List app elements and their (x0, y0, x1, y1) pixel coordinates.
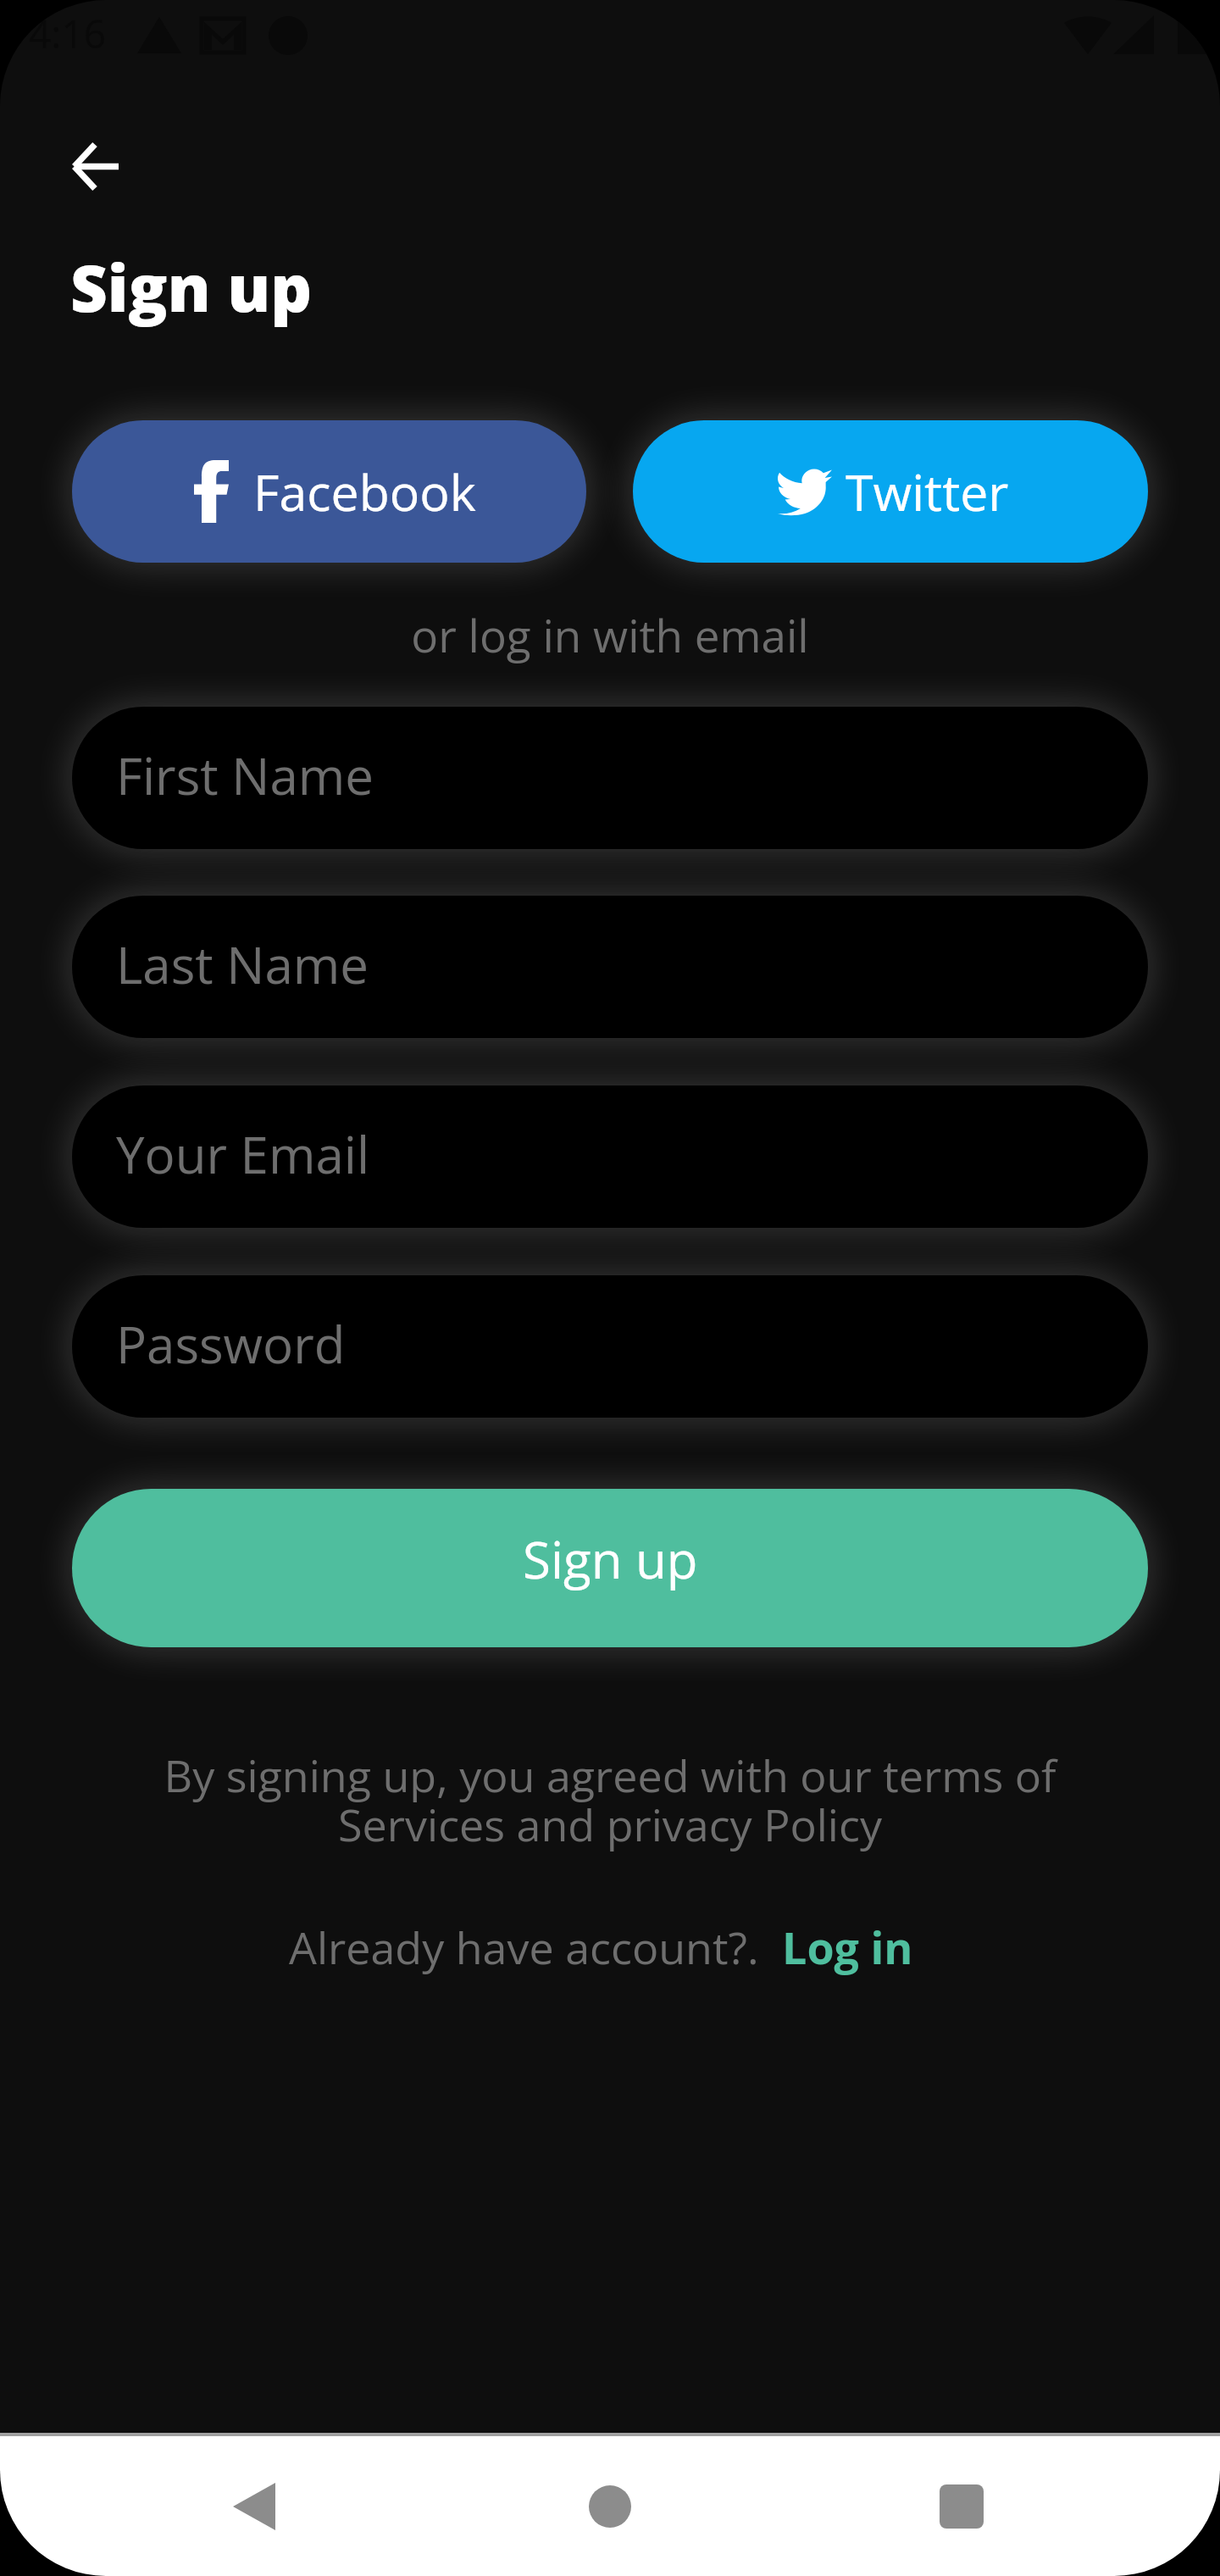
button[interactable]: Log in (777, 1908, 918, 1985)
staticText: First Name (116, 741, 374, 810)
staticText: Last Name (116, 930, 369, 999)
button[interactable]: Your Email (72, 1085, 1148, 1228)
button[interactable]: First Name (72, 707, 1148, 849)
staticText: Sign up (70, 243, 313, 330)
button[interactable]: Facebook (72, 420, 586, 563)
button[interactable]: Back (208, 2460, 301, 2553)
staticText: Log in (782, 1917, 913, 1977)
staticText: Facebook (253, 458, 476, 525)
button[interactable]: Recents (915, 2460, 1008, 2553)
staticText: Already have account?. (289, 1917, 759, 1977)
button[interactable]: Twitter (633, 420, 1148, 563)
staticText: Your Email (116, 1119, 370, 1189)
staticText: 4:16 (29, 7, 106, 60)
button[interactable]: Back (48, 119, 141, 213)
button[interactable]: Home (563, 2460, 657, 2553)
staticText: Password (116, 1309, 346, 1379)
staticText: Twitter (846, 458, 1009, 525)
staticText: By signing up, you agreed with our terms… (144, 1745, 1076, 1854)
staticText: Sign up (523, 1524, 698, 1594)
button[interactable]: Last Name (72, 896, 1148, 1038)
button[interactable]: Sign up (72, 1489, 1148, 1647)
button[interactable]: Password (72, 1275, 1148, 1418)
staticText: or log in with email (0, 604, 1220, 665)
